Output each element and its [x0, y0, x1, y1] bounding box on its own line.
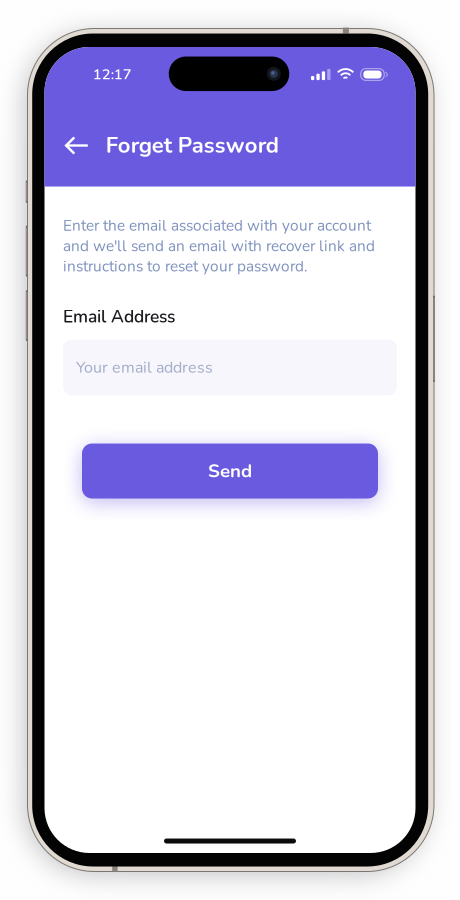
staticText: Forget Password [106, 130, 279, 160]
staticText: instructions to reset your password. [63, 256, 307, 277]
staticText: Email Address [63, 305, 175, 329]
staticText: 12:17 [93, 64, 132, 84]
staticText: Send [208, 458, 252, 484]
button[interactable]: Your email address [63, 339, 397, 395]
staticText: Enter the email associated with your acc… [63, 215, 371, 236]
button[interactable]: Back [60, 128, 94, 162]
staticText: Your email address [76, 357, 213, 378]
staticText: and we'll send an email with recover lin… [63, 236, 375, 256]
button[interactable]: Send [82, 443, 378, 498]
